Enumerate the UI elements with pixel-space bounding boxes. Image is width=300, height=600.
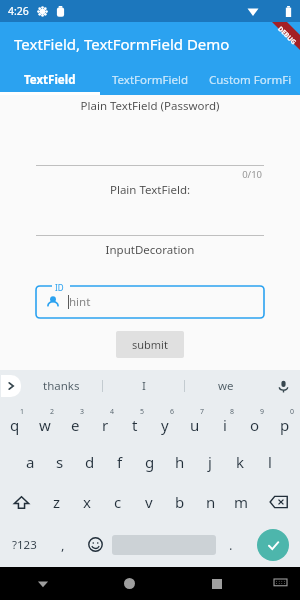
- button[interactable]: Home: [86, 567, 173, 600]
- staticText: y: [161, 415, 169, 435]
- staticText: a: [26, 452, 35, 472]
- staticText: x: [83, 492, 91, 512]
- button[interactable]: d: [75, 442, 105, 482]
- button[interactable]: y: [150, 402, 180, 442]
- staticText: n: [206, 492, 216, 512]
- button[interactable]: ?123: [0, 522, 48, 567]
- staticText: Custom FormFi: [209, 72, 292, 88]
- button[interactable]: h: [165, 442, 195, 482]
- button[interactable]: j: [195, 442, 225, 482]
- button[interactable]: Recents: [173, 567, 260, 600]
- staticText: u: [190, 415, 200, 435]
- button[interactable]: g: [135, 442, 165, 482]
- staticText: e: [71, 415, 80, 435]
- staticText: l: [268, 452, 272, 472]
- staticText: 0: [290, 407, 295, 417]
- staticText: Plain TextField:: [0, 182, 300, 198]
- staticText: o: [250, 415, 260, 435]
- staticText: p: [280, 415, 290, 435]
- staticText: TextField: [24, 72, 76, 88]
- button[interactable]: z: [42, 482, 72, 522]
- button[interactable]: q: [0, 402, 30, 442]
- button[interactable]: Emoji: [78, 522, 112, 567]
- staticText: 6: [170, 407, 175, 417]
- staticText: t: [132, 415, 138, 435]
- staticText: TextField, TextFormField Demo: [14, 34, 230, 54]
- staticText: ,: [61, 536, 65, 554]
- button[interactable]: l: [255, 442, 285, 482]
- button[interactable]: TextFormField: [100, 65, 200, 95]
- staticText: 9: [260, 407, 265, 417]
- staticText: Plain TextField (Password): [0, 98, 300, 114]
- staticText: j: [208, 452, 212, 472]
- button[interactable]: f: [105, 442, 135, 482]
- button[interactable]: p: [270, 402, 300, 442]
- button[interactable]: Shift: [0, 482, 42, 522]
- button[interactable]: Voice input: [266, 370, 300, 402]
- button[interactable]: v: [133, 482, 164, 522]
- staticText: 1: [20, 407, 25, 417]
- button[interactable]: submit: [116, 331, 184, 358]
- staticText: 0/10: [0, 168, 262, 181]
- button[interactable]: u: [180, 402, 210, 442]
- button[interactable]: .: [216, 522, 246, 567]
- button[interactable]: k: [225, 442, 255, 482]
- button[interactable]: c: [102, 482, 133, 522]
- staticText: we: [218, 378, 234, 394]
- staticText: hint: [69, 294, 91, 310]
- staticText: 4:26: [8, 4, 29, 18]
- button[interactable]: Keyboard: [260, 567, 300, 600]
- button[interactable]: n: [195, 482, 226, 522]
- button[interactable]: r: [90, 402, 120, 442]
- button[interactable]: w: [30, 402, 60, 442]
- staticText: q: [10, 415, 20, 435]
- button[interactable]: Expand suggestions: [1, 375, 21, 397]
- button[interactable]: thanks: [21, 370, 102, 402]
- staticText: w: [39, 415, 51, 435]
- staticText: i: [223, 415, 227, 435]
- staticText: s: [56, 452, 64, 472]
- button[interactable]: a: [15, 442, 45, 482]
- staticText: 5: [140, 407, 145, 417]
- staticText: k: [236, 452, 245, 472]
- button[interactable]: m: [226, 482, 257, 522]
- button[interactable]: we: [185, 370, 266, 402]
- staticText: c: [114, 492, 122, 512]
- staticText: 2: [50, 407, 55, 417]
- staticText: v: [145, 492, 153, 512]
- button[interactable]: TextField: [0, 65, 100, 95]
- staticText: d: [85, 452, 95, 472]
- staticText: DEBUG: [276, 24, 299, 47]
- staticText: b: [175, 492, 185, 512]
- staticText: I: [142, 378, 146, 394]
- staticText: z: [53, 492, 61, 512]
- button[interactable]: x: [72, 482, 102, 522]
- button[interactable]: Back: [0, 567, 86, 600]
- staticText: m: [234, 492, 249, 512]
- staticText: 4: [110, 407, 115, 417]
- button[interactable]: Enter: [257, 529, 289, 561]
- button[interactable]: o: [240, 402, 270, 442]
- staticText: f: [117, 452, 123, 472]
- staticText: thanks: [43, 378, 80, 394]
- button[interactable]: i: [210, 402, 240, 442]
- button[interactable]: s: [45, 442, 75, 482]
- staticText: h: [175, 452, 185, 472]
- staticText: InputDecoration: [0, 242, 300, 258]
- staticText: 3: [80, 407, 85, 417]
- button[interactable]: t: [120, 402, 150, 442]
- staticText: .: [229, 536, 233, 554]
- button[interactable]: I: [103, 370, 184, 402]
- button[interactable]: e: [60, 402, 90, 442]
- staticText: g: [145, 452, 155, 472]
- staticText: 8: [230, 407, 235, 417]
- staticText: r: [102, 415, 109, 435]
- staticText: ?123: [12, 537, 37, 553]
- button[interactable]: b: [164, 482, 195, 522]
- staticText: ID: [55, 282, 64, 293]
- button[interactable]: Custom FormFi: [200, 65, 300, 95]
- staticText: 7: [200, 407, 205, 417]
- button[interactable]: Backspace: [257, 482, 300, 522]
- button[interactable]: ,: [48, 522, 78, 567]
